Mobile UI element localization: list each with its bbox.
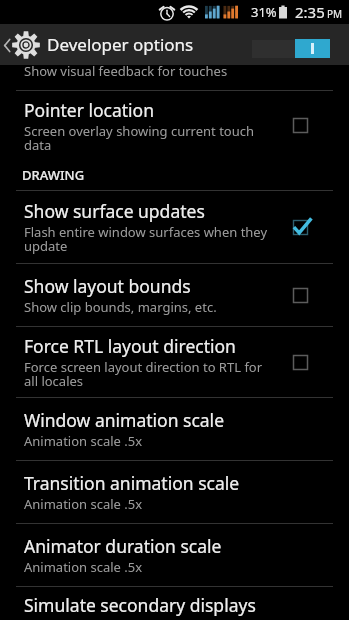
staticText: DRAWING: [22, 166, 85, 184]
staticText: Screen overlay showing current touch dat…: [24, 122, 278, 154]
button[interactable]: Simulate secondary displays: [0, 587, 349, 620]
button[interactable]: Navigate up: [0, 28, 42, 62]
button[interactable]: Show layout bounds: [0, 264, 349, 326]
staticText: Force screen layout direction to RTL for…: [24, 358, 278, 390]
button[interactable]: Window animation scale: [0, 398, 349, 460]
staticText: Show clip bounds, margins, etc.: [24, 298, 217, 316]
button[interactable]: Transition animation scale: [0, 461, 349, 523]
staticText: Animation scale .5x: [24, 558, 143, 576]
staticText: 31%: [251, 3, 277, 21]
staticText: Animator duration scale: [24, 534, 222, 558]
staticText: Window animation scale: [24, 408, 225, 432]
button[interactable]: Unchecked: [292, 353, 311, 372]
button[interactable]: Unchecked: [292, 116, 311, 135]
button[interactable]: Toggle developer options: [252, 39, 330, 58]
staticText: 2:35: [295, 2, 325, 22]
staticText: Pointer location: [24, 98, 155, 122]
staticText: Developer options: [47, 33, 194, 56]
staticText: Animation scale .5x: [24, 495, 143, 513]
button[interactable]: Show surface updates: [0, 191, 349, 263]
staticText: PM: [327, 7, 343, 21]
button[interactable]: Pointer location: [0, 91, 349, 160]
staticText: Show visual feedback for touches: [24, 65, 228, 80]
button[interactable]: Unchecked: [292, 286, 311, 305]
staticText: Simulate secondary displays: [24, 593, 256, 617]
button[interactable]: Force RTL layout direction: [0, 327, 349, 397]
staticText: Transition animation scale: [24, 471, 240, 495]
staticText: Flash entire window surfaces when they u…: [24, 223, 278, 255]
button[interactable]: Animator duration scale: [0, 524, 349, 586]
button[interactable]: Checked: [292, 218, 311, 237]
staticText: Force RTL layout direction: [24, 334, 236, 358]
staticText: Show surface updates: [24, 199, 205, 223]
staticText: Animation scale .5x: [24, 432, 143, 450]
staticText: Show layout bounds: [24, 274, 191, 298]
